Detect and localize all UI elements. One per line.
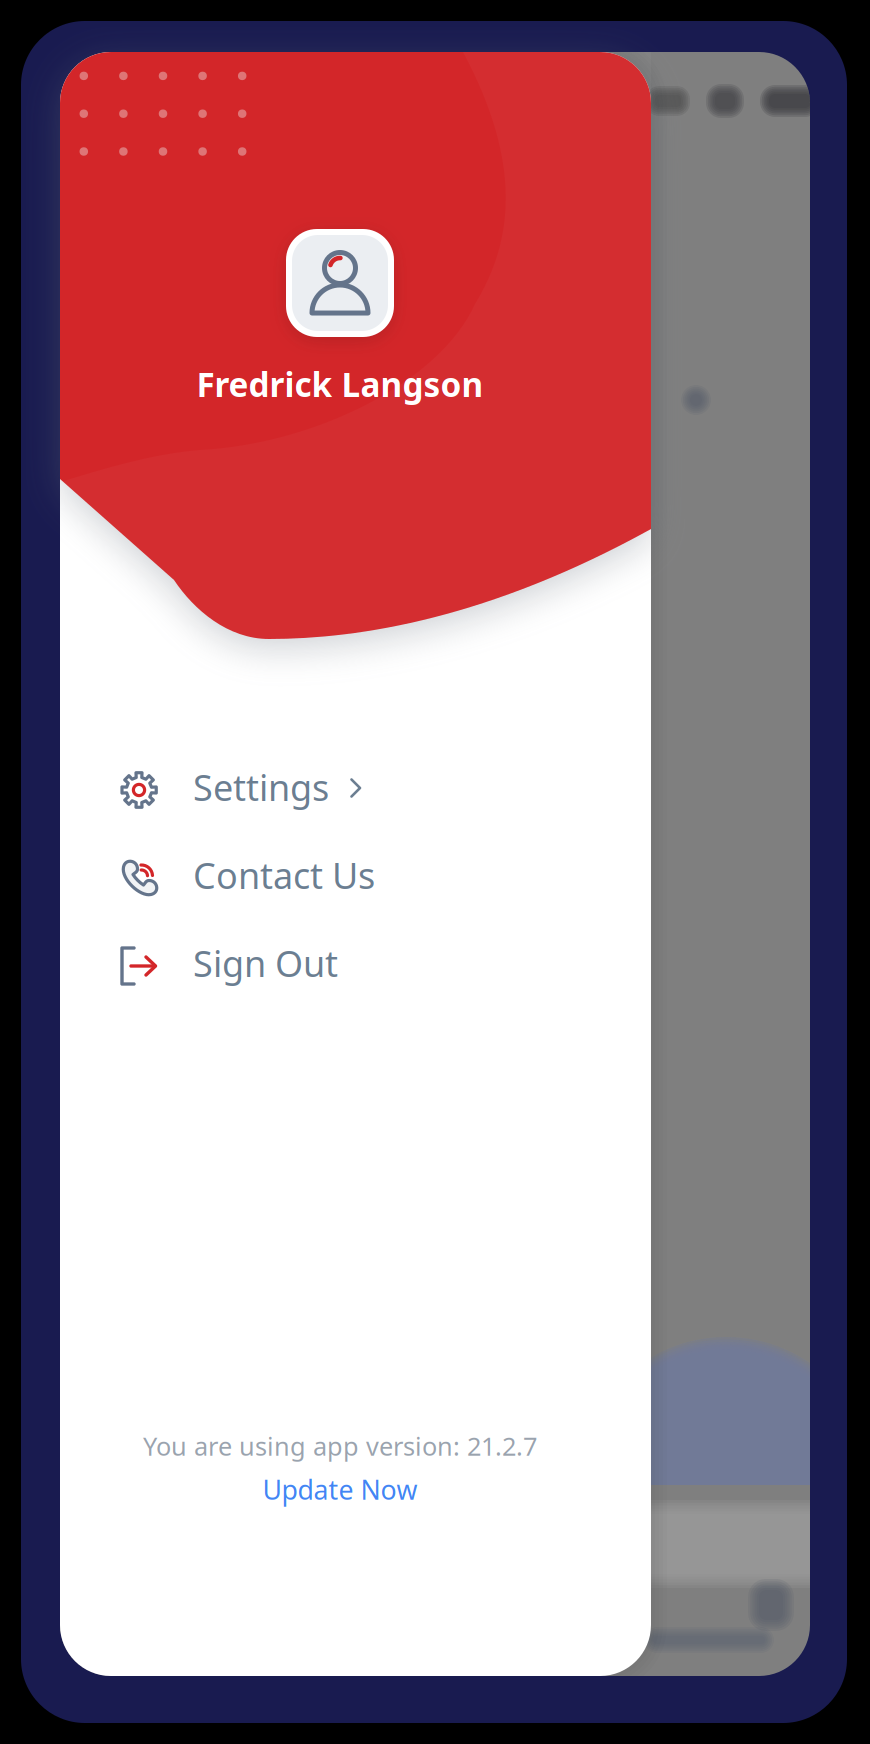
staticText: Update Now	[262, 1472, 417, 1507]
staticText: Settings	[193, 763, 329, 811]
button[interactable]: Contact Us	[60, 831, 651, 919]
staticText: Sign Out	[193, 939, 338, 987]
staticText: Contact Us	[193, 851, 375, 899]
button[interactable]: Settings	[60, 743, 651, 831]
staticText: Fredrick Langson	[196, 362, 483, 406]
button[interactable]: Sign Out	[60, 919, 651, 1007]
staticText: You are using app version: 21.2.7	[143, 1429, 537, 1463]
button[interactable]: Update Now	[252, 1467, 427, 1512]
